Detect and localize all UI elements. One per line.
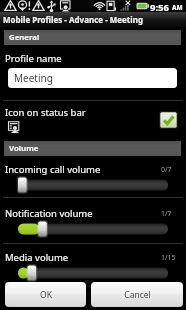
button[interactable]: Icon on status bar [0, 100, 186, 140]
staticText: 0/7 [161, 165, 172, 175]
button[interactable]: Media volume [0, 248, 186, 286]
button[interactable]: Notification volume [0, 204, 186, 242]
staticText: Media volume [5, 251, 69, 264]
staticText: Profile name [5, 52, 62, 65]
staticText: Notification volume [5, 207, 93, 220]
button[interactable]: OK [5, 282, 86, 307]
staticText: Incoming call volume [5, 163, 101, 176]
staticText: OK [40, 289, 52, 301]
staticText: Meeting [14, 71, 53, 85]
staticText: Mobile Profiles - Advance - Meeting [3, 14, 143, 25]
button[interactable]: Icon on status bar checkbox [159, 111, 178, 129]
button[interactable]: Meeting [8, 68, 177, 88]
button[interactable]: Incoming call volume [0, 160, 186, 198]
staticText: AM [172, 3, 183, 12]
button[interactable]: Cancel [91, 282, 183, 307]
staticText: Cancel [124, 289, 151, 301]
staticText: 1/7 [161, 209, 172, 219]
staticText: Icon on status bar [5, 106, 86, 119]
staticText: Volume [9, 143, 39, 154]
staticText: 9:56 [150, 1, 169, 12]
staticText: 1/15 [161, 253, 176, 263]
staticText: General [9, 32, 40, 43]
